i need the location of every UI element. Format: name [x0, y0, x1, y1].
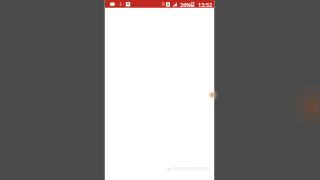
staticText: 13:52 — [198, 1, 213, 8]
staticText: 26% — [180, 1, 191, 8]
button[interactable] — [105, 8, 214, 180]
button[interactable]: Download complete — [125, 0, 131, 8]
button[interactable]: Downloading — [118, 0, 124, 8]
button[interactable]: Screen recorder running — [109, 0, 116, 8]
staticText: AZ SCREEN RECORDER — [172, 166, 210, 171]
